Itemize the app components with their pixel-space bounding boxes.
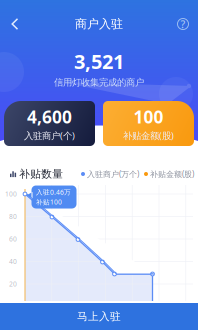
staticText: ? xyxy=(180,17,185,31)
staticText: 入驻0.46万 xyxy=(36,188,71,196)
staticText: 马上入驻 xyxy=(77,310,121,323)
button[interactable]: 返回 xyxy=(0,11,30,37)
staticText: 40 xyxy=(9,257,17,266)
button[interactable]: 帮助 xyxy=(168,11,198,37)
staticText: 补贴数量 xyxy=(19,167,63,180)
staticText: 补贴100 xyxy=(36,197,62,206)
staticText: 80 xyxy=(9,212,17,221)
staticText: 入驻商户(个) xyxy=(24,129,75,142)
staticText: 补贴金额(股) xyxy=(150,169,194,179)
staticText: 60 xyxy=(9,235,17,243)
staticText: 补贴金额(股) xyxy=(123,129,174,142)
staticText: 3,521 xyxy=(74,48,124,75)
staticText: 商户入驻 xyxy=(75,17,123,31)
staticText: 信用灯收集完成的商户 xyxy=(54,77,144,88)
staticText: 4,600 xyxy=(27,105,72,128)
staticText: 100 xyxy=(133,105,163,128)
button[interactable]: 马上入驻 xyxy=(0,303,198,330)
staticText: 100 xyxy=(5,190,17,198)
staticText: 20 xyxy=(9,280,17,288)
staticText: 入驻商户(万个) xyxy=(87,169,139,179)
